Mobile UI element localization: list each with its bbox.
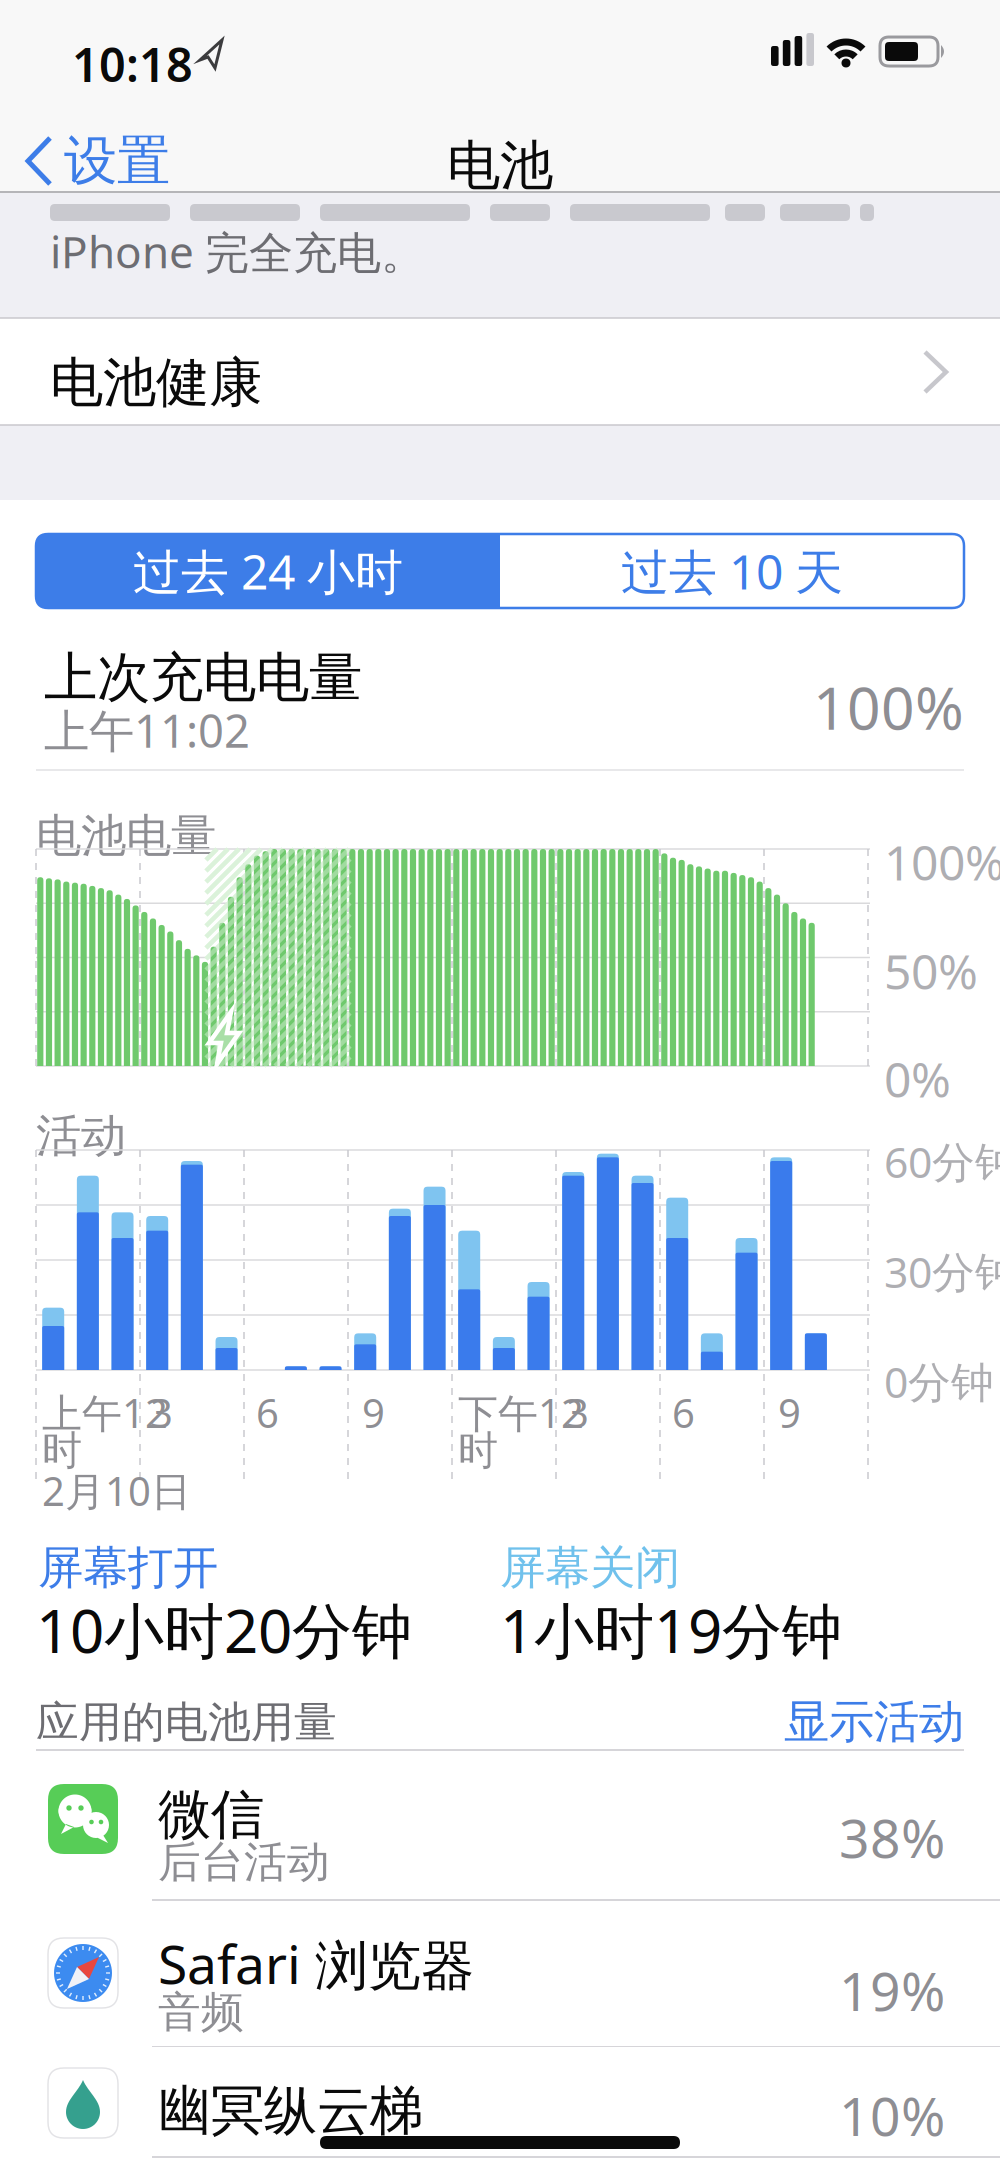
staticText: 30分钟	[884, 1243, 1000, 1300]
button[interactable]: Safari 浏览器	[0, 1902, 1000, 2047]
staticText: 38%	[839, 1802, 945, 1873]
staticText: iPhone 完全充电。	[50, 222, 425, 281]
staticText: 下午12	[458, 1386, 584, 1439]
staticText: 3	[150, 1386, 173, 1439]
staticText: 电池电量	[36, 808, 216, 864]
staticText: 10:18	[72, 33, 193, 95]
staticText: 活动	[36, 1108, 126, 1164]
staticText: 设置	[64, 128, 170, 194]
staticText: 1小时19分钟	[500, 1590, 842, 1670]
staticText: 6	[256, 1386, 279, 1439]
staticText: 时	[458, 1426, 498, 1475]
staticText: 6	[672, 1386, 695, 1439]
staticText: 后台活动	[158, 1836, 330, 1888]
staticText: 9	[362, 1386, 385, 1439]
staticText: 过去 24 小时	[133, 539, 403, 603]
staticText: 显示活动	[784, 1694, 964, 1750]
staticText: 电池	[447, 133, 553, 198]
staticText: 上午12	[42, 1386, 168, 1439]
staticText: 音频	[158, 1986, 244, 2038]
staticText: 应用的电池用量	[36, 1696, 337, 1748]
staticText: 60分钟	[884, 1133, 1000, 1190]
staticText: 10小时20分钟	[36, 1590, 412, 1670]
staticText: 0分钟	[884, 1353, 994, 1410]
staticText: 100%	[884, 830, 1000, 894]
staticText: 10%	[839, 2080, 945, 2151]
button[interactable]: 设置	[24, 128, 184, 194]
staticText: 时	[42, 1426, 82, 1475]
button[interactable]: 显示活动	[724, 1694, 964, 1750]
staticText: 电池健康	[50, 350, 262, 415]
staticText: 0%	[884, 1047, 951, 1111]
staticText: 屏幕打开	[38, 1540, 218, 1596]
button[interactable]: 过去 10 天	[500, 534, 964, 608]
staticText: 50%	[884, 939, 978, 1003]
staticText: 9	[778, 1386, 801, 1439]
staticText: 3	[566, 1386, 589, 1439]
staticText: 幽冥纵云梯	[158, 2078, 423, 2143]
staticText: 2月10日	[42, 1464, 191, 1517]
staticText: 微信	[158, 1782, 264, 1847]
button[interactable]: 过去 24 小时	[36, 534, 500, 608]
staticText: 过去 10 天	[621, 539, 843, 603]
button[interactable]: 幽冥纵云梯	[0, 2047, 1000, 2164]
staticText: Safari 浏览器	[158, 1928, 474, 1999]
staticText: 100%	[813, 668, 964, 746]
button[interactable]: 电池健康	[0, 318, 1000, 425]
staticText: 上午11:02	[44, 700, 250, 760]
button[interactable]: 微信	[0, 1770, 1000, 1915]
staticText: 19%	[839, 1955, 945, 2026]
staticText: 上次充电电量	[44, 645, 362, 710]
staticText: 屏幕关闭	[500, 1540, 680, 1596]
